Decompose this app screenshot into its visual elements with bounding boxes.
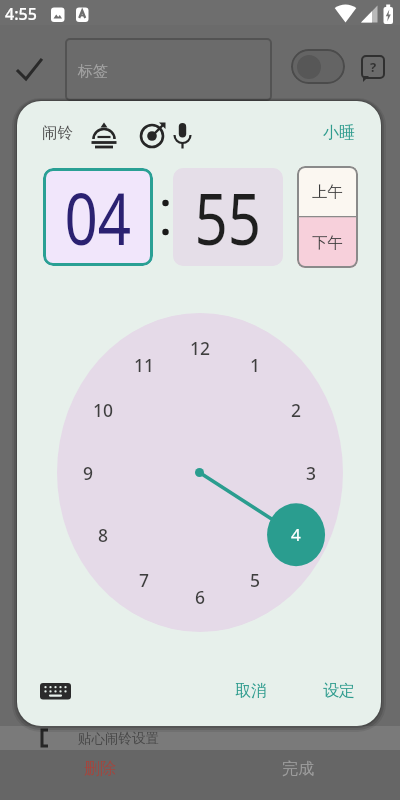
button[interactable]: 55 [173, 168, 283, 266]
staticText: 55 [194, 169, 262, 266]
staticText: 标签 [78, 62, 108, 81]
button[interactable]: 下午 [297, 217, 358, 268]
staticText: 3 [306, 461, 317, 485]
staticText: 9 [83, 461, 94, 485]
staticText: 贴心闹铃设置 [78, 730, 159, 747]
staticText: 小睡 [323, 123, 355, 143]
staticText: 11 [134, 353, 155, 377]
staticText: 12 [190, 336, 211, 360]
staticText: 8 [98, 523, 109, 547]
button[interactable]: 4 [267, 503, 325, 566]
staticText: 4:55 [5, 3, 37, 25]
button[interactable]: 上午 [297, 166, 358, 217]
staticText: 6 [195, 585, 206, 609]
button[interactable] [138, 121, 168, 150]
staticText: 上午 [312, 182, 343, 202]
staticText: 5 [250, 568, 261, 592]
staticText: 完成 [282, 759, 314, 779]
button[interactable] [14, 56, 44, 84]
staticText: 10 [93, 398, 114, 422]
staticText: 04 [64, 169, 132, 266]
button[interactable] [361, 55, 385, 79]
button[interactable]: 小睡 [313, 118, 365, 148]
button[interactable] [291, 49, 345, 84]
button[interactable]: 完成 [263, 754, 333, 784]
button[interactable] [65, 38, 272, 101]
button[interactable]: 取消 [221, 676, 281, 706]
staticText: 1 [250, 353, 261, 377]
staticText: 2 [291, 398, 302, 422]
staticText: 取消 [235, 681, 267, 701]
staticText: 7 [139, 568, 150, 592]
staticText: 删除 [84, 759, 116, 779]
staticText: ? [370, 58, 377, 76]
staticText: 下午 [312, 233, 343, 253]
button[interactable]: 04 [43, 168, 153, 266]
staticText: 设定 [323, 681, 355, 701]
button[interactable] [172, 122, 193, 151]
button[interactable]: 设定 [309, 676, 369, 706]
button[interactable] [40, 683, 71, 700]
staticText: 4 [291, 523, 301, 546]
button[interactable]: 删除 [65, 754, 135, 784]
staticText: 闹铃 [42, 123, 73, 143]
button[interactable] [90, 122, 118, 149]
